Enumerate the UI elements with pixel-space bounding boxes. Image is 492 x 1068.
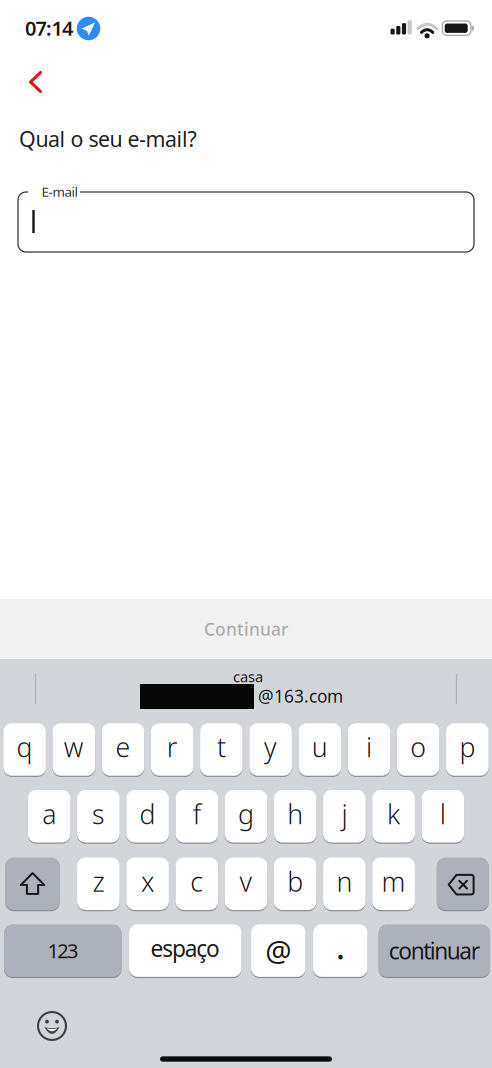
button[interactable]: @ (251, 924, 306, 977)
staticText: i (366, 729, 372, 765)
staticText: E-mail (41, 183, 77, 200)
button[interactable]: Delete (437, 857, 489, 910)
staticText: r (167, 729, 178, 765)
button[interactable]: c (175, 857, 218, 910)
staticText: y (264, 729, 277, 765)
button[interactable]: y (249, 723, 292, 776)
staticText: @163.com (258, 684, 343, 707)
button[interactable]: b (274, 857, 316, 910)
staticText: u (312, 729, 328, 765)
button[interactable]: u (298, 723, 341, 776)
staticText: 07:14 (25, 15, 73, 41)
button[interactable]: h (274, 790, 316, 842)
staticText: k (387, 796, 400, 831)
button[interactable]: espaço (129, 924, 242, 977)
staticText: c (190, 864, 203, 899)
staticText: 123 (47, 937, 78, 964)
staticText: Qual o seu e-mail? (19, 124, 196, 153)
staticText: x (141, 864, 154, 899)
button[interactable]: Shift (5, 857, 60, 910)
button[interactable]: casa @163.com (126, 663, 366, 715)
button[interactable]: r (151, 723, 193, 776)
staticText: t (217, 729, 226, 765)
staticText: . (336, 923, 345, 969)
button[interactable]: e (102, 723, 144, 776)
button[interactable]: s (77, 790, 120, 842)
staticText: f (193, 796, 201, 831)
button[interactable]: Continuar (0, 599, 492, 659)
button[interactable]: x (126, 857, 169, 910)
button[interactable]: g (225, 790, 267, 842)
button[interactable]: j (323, 790, 366, 842)
staticText: casa (233, 667, 263, 686)
staticText: q (17, 729, 33, 765)
button[interactable]: d (126, 790, 169, 842)
staticText: v (239, 864, 252, 899)
staticText: espaço (150, 933, 220, 963)
staticText: h (287, 796, 303, 831)
staticText: j (341, 796, 347, 831)
button[interactable]: p (446, 723, 489, 776)
staticText: s (92, 796, 105, 831)
staticText: z (92, 864, 104, 899)
staticText: a (42, 796, 56, 831)
staticText: w (64, 729, 84, 765)
staticText: e (115, 729, 130, 765)
staticText: d (140, 796, 156, 831)
button[interactable]: Voltar (13, 60, 57, 104)
button[interactable]: i (348, 723, 390, 776)
staticText: l (440, 796, 446, 831)
staticText: Continuar (204, 617, 288, 640)
button[interactable]: k (372, 790, 415, 842)
button[interactable]: q (3, 723, 46, 776)
button[interactable]: . (313, 924, 368, 977)
button[interactable]: m (372, 857, 415, 910)
staticText: o (410, 729, 426, 765)
button[interactable]: a (28, 790, 70, 842)
button[interactable]: f (175, 790, 218, 842)
button[interactable]: continuar (379, 924, 490, 977)
staticText: m (382, 864, 406, 899)
button[interactable]: z (77, 857, 120, 910)
button[interactable]: 123 (4, 924, 121, 977)
button[interactable]: n (323, 857, 366, 910)
staticText: @ (265, 931, 291, 970)
button[interactable]: l (421, 790, 464, 842)
staticText: continuar (389, 935, 480, 966)
button[interactable]: w (52, 723, 95, 776)
button[interactable]: t (200, 723, 243, 776)
staticText: b (287, 864, 303, 899)
button[interactable]: Emoji (36, 1010, 68, 1042)
button[interactable]: o (397, 723, 439, 776)
staticText: p (459, 729, 475, 765)
button[interactable]: E-mail (18, 192, 474, 252)
staticText: n (336, 864, 352, 899)
button[interactable]: v (225, 857, 267, 910)
staticText: g (238, 796, 254, 831)
